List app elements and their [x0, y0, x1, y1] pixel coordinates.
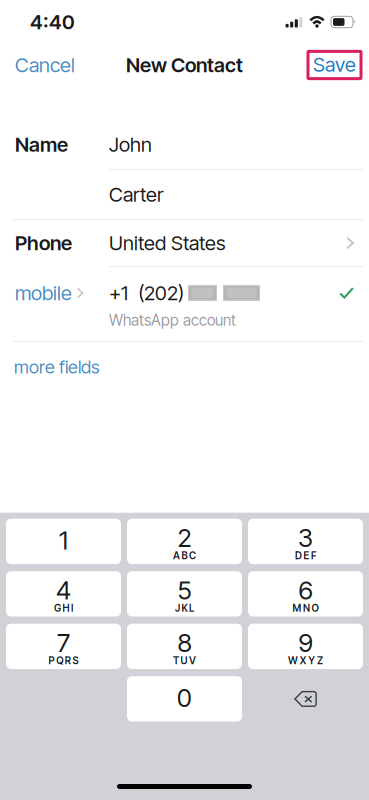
- button[interactable]: 2: [127, 519, 242, 564]
- staticText: 4: [56, 575, 71, 606]
- staticText: +1 (202): [109, 281, 184, 305]
- staticText: Save: [313, 52, 356, 77]
- staticText: ABC: [173, 550, 196, 562]
- staticText: 0: [177, 682, 192, 713]
- staticText: TUV: [173, 655, 196, 667]
- staticText: New Contact: [126, 53, 243, 77]
- staticText: 8: [177, 627, 191, 658]
- staticText: 3: [298, 522, 313, 553]
- staticText: GHI: [54, 602, 73, 614]
- staticText: Cancel: [15, 53, 75, 77]
- staticText: more fields: [14, 356, 100, 378]
- staticText: DEF: [295, 550, 316, 562]
- button[interactable]: 1: [6, 519, 121, 564]
- staticText: WXYZ: [288, 655, 323, 667]
- button[interactable]: Save: [308, 51, 369, 79]
- staticText: United States: [109, 231, 226, 255]
- staticText: 2: [177, 522, 191, 553]
- button[interactable]: 7: [6, 624, 121, 669]
- button[interactable]: 6: [248, 571, 363, 617]
- button[interactable]: Delete: [248, 676, 363, 722]
- button[interactable]: 8: [127, 624, 242, 669]
- staticText: Name: [15, 132, 68, 157]
- button[interactable]: 3: [248, 519, 363, 564]
- button[interactable]: 0: [127, 676, 242, 722]
- button[interactable]: 5: [127, 571, 242, 617]
- staticText: John: [109, 132, 152, 157]
- staticText: MNO: [292, 602, 319, 614]
- staticText: Phone: [15, 231, 72, 255]
- staticText: PQRS: [49, 655, 78, 667]
- staticText: WhatsApp account: [109, 311, 236, 330]
- button[interactable]: Phone: [0, 220, 369, 266]
- staticText: 7: [57, 627, 70, 658]
- button[interactable]: 4: [6, 571, 121, 617]
- staticText: 5: [177, 575, 191, 606]
- staticText: 9: [298, 627, 312, 658]
- button[interactable]: mobile: [15, 282, 109, 304]
- staticText: 4:40: [30, 10, 75, 34]
- button[interactable]: 9: [248, 624, 363, 669]
- button[interactable]: more fields: [0, 342, 369, 390]
- staticText: 1: [59, 525, 68, 556]
- staticText: mobile: [15, 281, 72, 305]
- staticText: JKL: [175, 602, 194, 614]
- button[interactable]: Cancel: [0, 45, 87, 85]
- staticText: Carter: [109, 182, 164, 207]
- staticText: 6: [298, 575, 312, 606]
